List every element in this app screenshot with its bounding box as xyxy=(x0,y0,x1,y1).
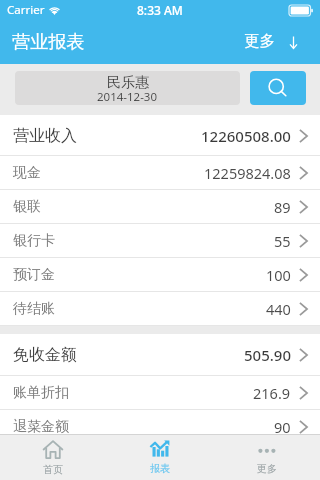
button[interactable]: 免收金额 xyxy=(0,334,320,376)
button[interactable]: 待结账 xyxy=(0,292,320,326)
staticText: 退菜金额 xyxy=(13,418,69,436)
button[interactable]: 退菜金额 xyxy=(0,410,320,444)
button[interactable]: 更多 xyxy=(213,435,320,480)
staticText: 营业收入 xyxy=(13,126,77,146)
button[interactable]: 首页 xyxy=(0,435,106,480)
staticText: 更多 xyxy=(257,462,277,475)
staticText: 营业报表 xyxy=(12,30,85,53)
staticText: 216.9 xyxy=(253,383,291,403)
staticText: 账单折扣 xyxy=(13,384,69,402)
button[interactable]: 预订金 xyxy=(0,258,320,292)
staticText: 待结账 xyxy=(13,300,55,318)
staticText: 银行卡 xyxy=(13,232,55,250)
button[interactable]: 银行卡 xyxy=(0,224,320,258)
button[interactable]: 民乐惠 xyxy=(15,71,240,105)
staticText: 更多 xyxy=(244,31,276,51)
staticText: 免收金额 xyxy=(13,345,77,365)
staticText: 现金 xyxy=(13,164,41,182)
staticText: 90 xyxy=(274,417,291,437)
staticText: 预订金 xyxy=(13,266,55,284)
button[interactable]: Search xyxy=(250,71,306,105)
button[interactable]: 银联 xyxy=(0,190,320,224)
staticText: 银联 xyxy=(13,198,41,216)
button[interactable]: 报表 xyxy=(106,435,213,480)
staticText: 55 xyxy=(274,231,291,251)
button[interactable]: 营业收入 xyxy=(0,115,320,156)
staticText: 民乐惠 xyxy=(107,74,149,92)
staticText: 首页 xyxy=(43,463,63,476)
staticText: Carrier xyxy=(7,2,45,18)
button[interactable]: 更多 xyxy=(232,20,320,64)
staticText: 100 xyxy=(266,265,291,285)
staticText: 8:33 AM xyxy=(137,2,183,18)
button[interactable]: 账单折扣 xyxy=(0,376,320,410)
button[interactable]: 现金 xyxy=(0,156,320,190)
staticText: 2014-12-30 xyxy=(97,89,158,105)
staticText: 89 xyxy=(274,197,291,217)
staticText: 505.90 xyxy=(244,345,291,365)
staticText: 440 xyxy=(266,299,291,319)
staticText: 12259824.08 xyxy=(204,163,291,183)
staticText: 12260508.00 xyxy=(201,126,291,146)
staticText: 报表 xyxy=(150,462,170,475)
